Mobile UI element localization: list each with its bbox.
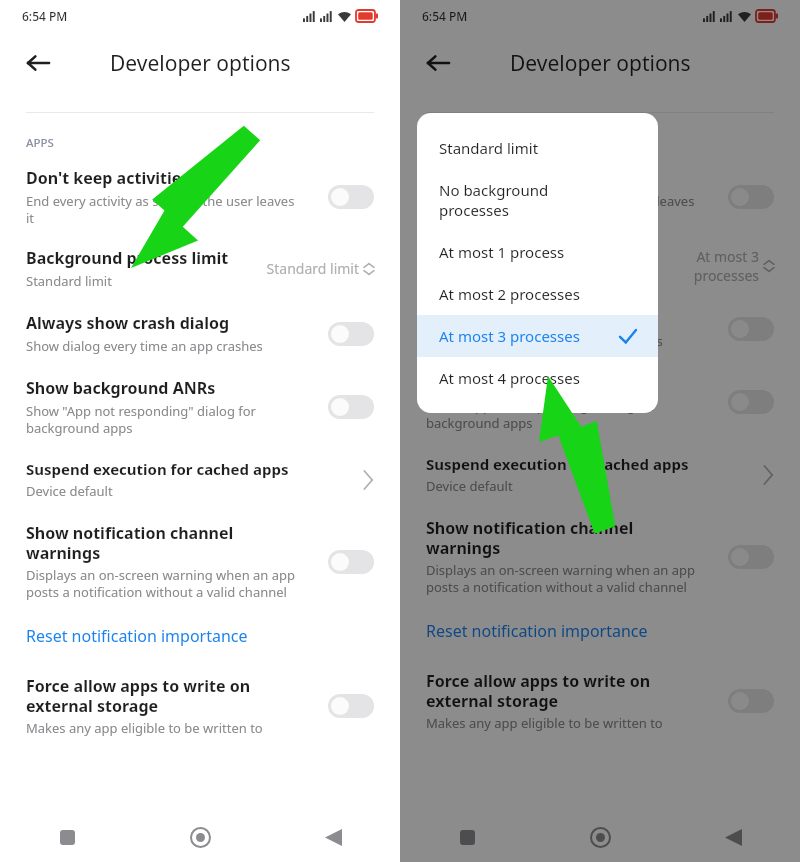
staticText: Show "App not responding" dialog for bac… (26, 402, 256, 437)
staticText: Developer options (110, 49, 291, 78)
staticText: At most 4 processes (439, 368, 636, 388)
staticText: Don't keep activities (426, 167, 590, 189)
button[interactable]: Always show crash dialog (400, 307, 800, 350)
staticText: Reset notification importance (426, 620, 648, 642)
staticText: Device default (26, 482, 113, 500)
staticText: 6:54 PM (422, 8, 468, 24)
button[interactable]: Force allow apps to write on external st… (0, 675, 400, 737)
staticText: APPS (26, 135, 54, 151)
staticText: Standard limit (266, 259, 359, 278)
staticText: End every activity as soon as the user l… (26, 192, 295, 227)
button[interactable]: Toggle (728, 545, 774, 569)
button[interactable]: At most 3 processes (417, 315, 658, 357)
button[interactable]: Show background ANRs (400, 372, 800, 432)
staticText: Always show crash dialog (26, 312, 230, 334)
button[interactable]: Show notification channel warnings (0, 522, 400, 601)
staticText: Suspend execution for cached apps (26, 459, 289, 479)
staticText: Background process limit (426, 255, 629, 277)
staticText: Makes any app eligible to be written to (26, 719, 263, 737)
staticText: Displays an on-screen warning when an ap… (426, 561, 696, 596)
button[interactable]: Background process limit (400, 247, 800, 285)
button[interactable]: Toggle (328, 322, 374, 346)
staticText: Force allow apps to write on external st… (426, 670, 651, 711)
button[interactable]: Force allow apps to write on external st… (400, 670, 800, 732)
staticText: Show dialog every time an app crashes (426, 332, 663, 350)
button[interactable]: Suspend execution for cached apps (400, 454, 800, 495)
button[interactable]: At most 4 processes (417, 357, 658, 399)
staticText: Show notification channel warnings (26, 522, 234, 563)
button[interactable]: Reset notification importance (0, 621, 400, 651)
button[interactable]: Home (134, 812, 267, 862)
staticText: Show background ANRs (426, 372, 616, 394)
staticText: No background processes (439, 180, 636, 220)
button[interactable]: Show background ANRs (0, 377, 400, 437)
staticText: Force allow apps to write on external st… (26, 675, 251, 716)
button[interactable]: Toggle (328, 395, 374, 419)
staticText: Makes any app eligible to be written to (426, 714, 663, 732)
button[interactable]: Don't keep activities (400, 167, 800, 227)
staticText: Developer options (510, 49, 691, 78)
staticText: Displays an on-screen warning when an ap… (26, 566, 296, 601)
staticText: Standard limit (26, 272, 112, 290)
staticText: At most 3 processes (439, 326, 620, 346)
button[interactable]: Home (534, 812, 667, 862)
button[interactable]: Back (414, 39, 462, 87)
button[interactable]: At most 1 process (417, 231, 658, 273)
staticText: Show background ANRs (26, 377, 216, 399)
button[interactable]: Back (667, 812, 800, 862)
button[interactable]: Standard limit (417, 127, 658, 169)
staticText: Show dialog every time an app crashes (26, 337, 263, 355)
staticText: At most 2 processes (439, 284, 636, 304)
button[interactable]: Toggle (728, 317, 774, 341)
button[interactable]: Background process limit (0, 247, 400, 290)
button[interactable]: Suspend execution for cached apps (0, 459, 400, 500)
staticText: Standard limit (439, 138, 636, 158)
button[interactable]: Reset notification importance (400, 616, 800, 646)
button[interactable]: Always show crash dialog (0, 312, 400, 355)
button[interactable]: Don't keep activities (0, 167, 400, 227)
button[interactable]: Toggle (728, 390, 774, 414)
staticText: Always show crash dialog (426, 307, 630, 329)
button[interactable]: At most 2 processes (417, 273, 658, 315)
button[interactable]: No background processes (417, 169, 658, 231)
staticText: At most 3 processes (693, 247, 759, 285)
button[interactable]: Toggle (728, 185, 774, 209)
staticText: Show notification channel warnings (426, 517, 634, 558)
staticText: Suspend execution for cached apps (426, 454, 689, 474)
staticText: End every activity as soon as the user l… (426, 192, 695, 227)
button[interactable]: Recents (400, 812, 534, 862)
staticText: Show "App not responding" dialog for bac… (426, 397, 656, 432)
button[interactable]: Toggle (728, 689, 774, 713)
button[interactable]: Recents (0, 812, 134, 862)
staticText: Device default (426, 477, 513, 495)
staticText: Background process limit (26, 247, 229, 269)
button[interactable]: Toggle (328, 694, 374, 718)
staticText: Don't keep activities (26, 167, 190, 189)
button[interactable]: Back (267, 812, 400, 862)
staticText: APPS (426, 135, 454, 151)
button[interactable]: Back (14, 39, 62, 87)
staticText: At most 1 process (439, 242, 636, 262)
button[interactable]: Toggle (328, 550, 374, 574)
button[interactable]: Toggle (328, 185, 374, 209)
staticText: 6:54 PM (22, 8, 68, 24)
button[interactable]: Show notification channel warnings (400, 517, 800, 596)
staticText: Reset notification importance (26, 625, 248, 647)
